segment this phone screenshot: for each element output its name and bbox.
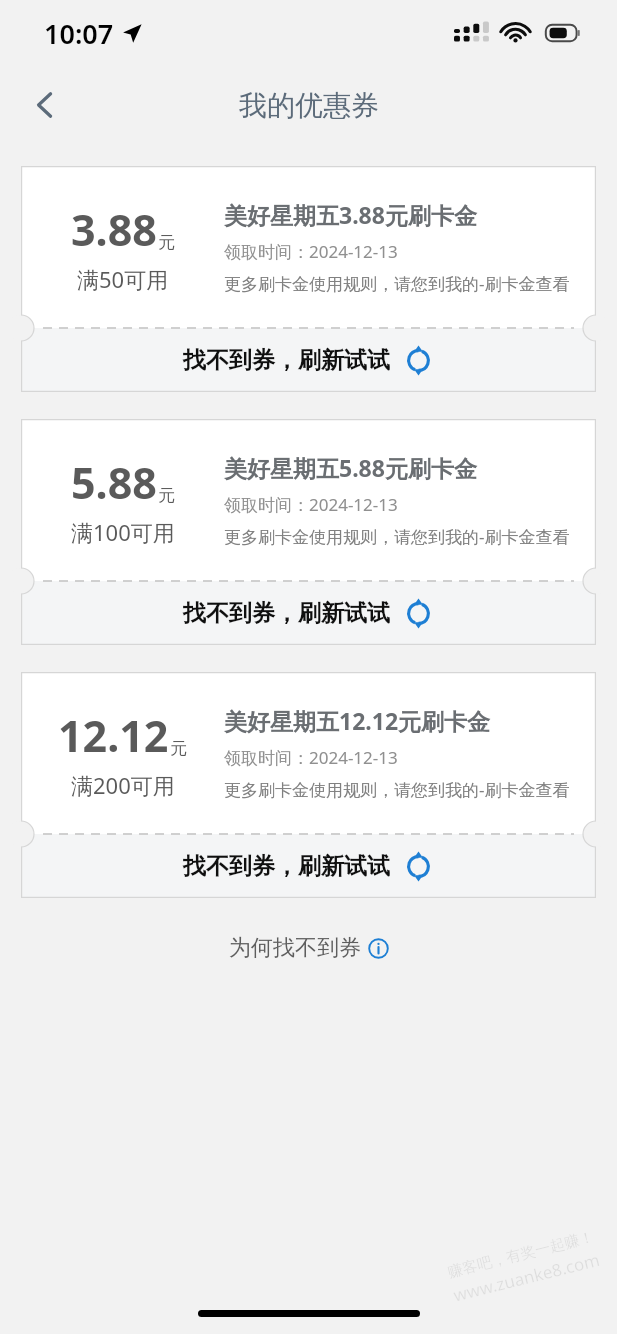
staticText: 我的优惠券 [239, 88, 379, 123]
staticText: 元 [170, 738, 187, 759]
staticText: www.zuanke8.com [451, 1248, 602, 1306]
staticText: 领取时间：2024-12-13 [224, 240, 398, 263]
button[interactable]: 12.12 [21, 672, 596, 898]
staticText: 满100可用 [71, 517, 175, 547]
staticText: 领取时间：2024-12-13 [224, 746, 398, 769]
staticText: 美好星期五5.88元刷卡金 [224, 452, 477, 483]
staticText: 找不到券，刷新试试 [183, 852, 390, 881]
staticText: 找不到券，刷新试试 [183, 346, 390, 375]
button[interactable]: 找不到券，刷新试试 [21, 328, 596, 392]
staticText: 为何找不到券 [229, 934, 361, 962]
staticText: 更多刷卡金使用规则，请您到我的-刷卡金查看 [224, 778, 570, 801]
staticText: 更多刷卡金使用规则，请您到我的-刷卡金查看 [224, 525, 570, 548]
button[interactable]: 5.88 [21, 419, 596, 645]
staticText: 元 [158, 485, 175, 506]
staticText: 12.12 [58, 706, 169, 765]
staticText: 赚客吧，有奖一起赚！ [446, 1227, 596, 1282]
staticText: 3.88 [71, 200, 157, 259]
button[interactable]: 找不到券，刷新试试 [21, 581, 596, 645]
staticText: 美好星期五3.88元刷卡金 [224, 199, 477, 230]
other: Refresh [403, 598, 434, 629]
staticText: 5.88 [71, 453, 157, 512]
staticText: 找不到券，刷新试试 [183, 599, 390, 628]
staticText: 更多刷卡金使用规则，请您到我的-刷卡金查看 [224, 272, 570, 295]
button[interactable]: 3.88 [21, 166, 596, 392]
button[interactable]: 为何找不到券 [0, 934, 617, 962]
staticText: 满200可用 [71, 770, 175, 800]
button[interactable]: Back [16, 76, 74, 134]
other: Refresh [403, 851, 434, 882]
staticText: 美好星期五12.12元刷卡金 [224, 705, 491, 736]
button[interactable]: 找不到券，刷新试试 [21, 834, 596, 898]
staticText: 满50可用 [77, 264, 169, 294]
staticText: 10:07 [44, 15, 114, 52]
staticText: 领取时间：2024-12-13 [224, 493, 398, 516]
staticText: 元 [158, 232, 175, 253]
other: Refresh [403, 345, 434, 376]
